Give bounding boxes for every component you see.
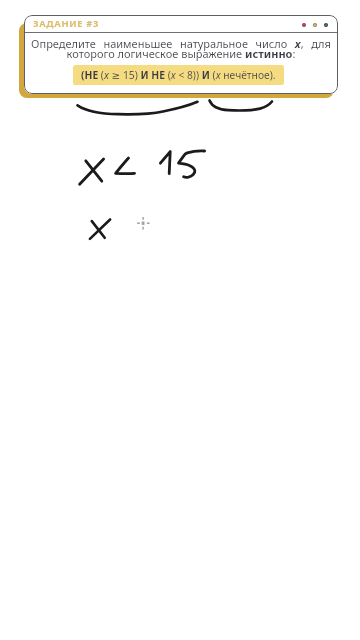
button[interactable]: ЗАДАНИЕ #3	[24, 15, 338, 94]
staticText: (НЕ (x ≥ 15) И НЕ (x < 8)) И (x нечётное…	[81, 68, 276, 82]
staticText: Определите наименьшее натуральное число …	[30, 36, 332, 61]
staticText: ЗАДАНИЕ #3	[33, 17, 100, 30]
